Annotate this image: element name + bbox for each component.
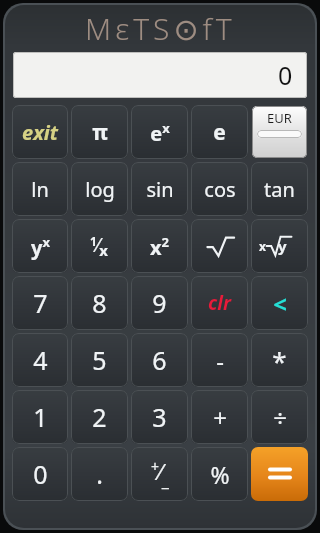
staticText: % [210, 459, 230, 490]
staticText: 0 [278, 58, 293, 92]
staticText: 5 [92, 343, 107, 377]
button[interactable]: 1 [12, 390, 68, 444]
staticText: cos [204, 176, 236, 203]
button[interactable]: 9 [131, 276, 188, 330]
button[interactable]: plus minus [131, 447, 188, 501]
button[interactable]: tan [251, 162, 308, 216]
staticText: 7 [33, 286, 48, 320]
button[interactable]: ln [12, 162, 68, 216]
button[interactable]: 7 [12, 276, 68, 330]
button[interactable]: log [71, 162, 128, 216]
button[interactable]: backspace [251, 276, 308, 330]
button[interactable]: plus [191, 390, 248, 444]
staticText: 2 [92, 400, 107, 434]
button[interactable]: one over x [71, 219, 128, 273]
staticText: tan [264, 176, 295, 203]
button[interactable]: cos [191, 162, 248, 216]
button[interactable]: divide [251, 390, 308, 444]
staticText: clr [208, 290, 231, 316]
button[interactable]: 2 [71, 390, 128, 444]
button[interactable]: clear [191, 276, 248, 330]
staticText: log [85, 176, 115, 203]
staticText: x2 [150, 233, 169, 260]
button[interactable]: exit [12, 105, 68, 159]
staticText: +⁄_ [151, 456, 169, 492]
staticText: . [96, 457, 103, 491]
staticText: < [273, 287, 287, 320]
staticText: e [213, 118, 226, 147]
staticText: MεTS⊙fT [85, 8, 236, 49]
button[interactable]: e [191, 105, 248, 159]
staticText: + [213, 401, 227, 434]
staticText: ÷ [273, 401, 287, 434]
button[interactable]: multiply [251, 333, 308, 387]
staticText: - [216, 344, 224, 377]
button[interactable]: x squared [131, 219, 188, 273]
button[interactable]: 0 [12, 447, 68, 501]
button[interactable]: e to the x [131, 105, 188, 159]
button[interactable]: 8 [71, 276, 128, 330]
staticText: 1 [33, 400, 48, 434]
button[interactable]: sin [131, 162, 188, 216]
staticText: y [278, 236, 287, 256]
button[interactable]: Currency EUR [252, 106, 307, 158]
button[interactable]: 4 [12, 333, 68, 387]
button[interactable]: 5 [71, 333, 128, 387]
staticText: 6 [152, 343, 167, 377]
staticText: 0 [33, 457, 48, 491]
staticText: sin [146, 176, 174, 203]
button[interactable]: percent [191, 447, 248, 501]
staticText: 8 [92, 286, 107, 320]
button[interactable]: 6 [131, 333, 188, 387]
button[interactable]: y to the x [12, 219, 68, 273]
button[interactable]: pi [71, 105, 128, 159]
staticText: 3 [152, 400, 167, 434]
staticText: EUR [267, 109, 292, 127]
button[interactable]: minus [191, 333, 248, 387]
staticText: 1⁄x [90, 232, 109, 260]
button[interactable]: Equals [251, 447, 308, 501]
staticText: x [259, 238, 266, 254]
button[interactable]: square root [191, 219, 248, 273]
button[interactable]: 3 [131, 390, 188, 444]
staticText: ex [150, 119, 170, 146]
button[interactable]: decimal point [71, 447, 128, 501]
staticText: ln [31, 176, 49, 203]
staticText: 9 [152, 286, 167, 320]
staticText: * [272, 343, 287, 378]
button[interactable]: x root of y [251, 219, 308, 273]
staticText: exit [22, 119, 58, 146]
staticText: 4 [33, 343, 48, 377]
staticText: yx [31, 233, 50, 260]
staticText: π [92, 118, 108, 147]
